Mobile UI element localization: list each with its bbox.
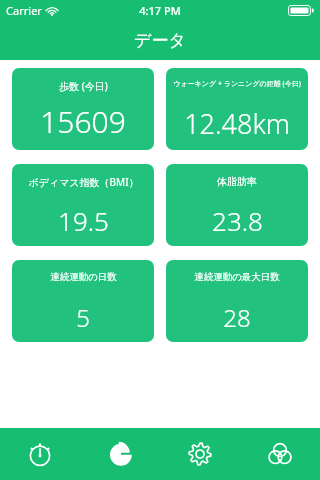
staticText: 歩数 (今日): [59, 79, 108, 93]
button[interactable]: 連続運動の日数: [12, 260, 154, 342]
button[interactable]: Data: [80, 428, 160, 480]
staticText: 28: [223, 301, 251, 334]
staticText: 12.48km: [184, 105, 290, 142]
staticText: 連続運動の日数: [50, 271, 117, 283]
staticText: 連続運動の最大日数: [194, 271, 280, 283]
button[interactable]: Settings: [160, 428, 240, 480]
staticText: データ: [134, 30, 186, 51]
staticText: 5: [76, 301, 90, 334]
button[interactable]: ウォーキング + ランニングの距離 (今日): [166, 68, 308, 150]
staticText: ボディマス指数（BMI）: [28, 175, 139, 189]
staticText: 23.8: [212, 203, 263, 238]
staticText: 15609: [40, 101, 126, 142]
button[interactable]: 体脂肪率: [166, 164, 308, 246]
staticText: 4:17 PM: [139, 3, 181, 18]
staticText: 19.5: [58, 203, 109, 238]
button[interactable]: ボディマス指数（BMI）: [12, 164, 154, 246]
staticText: ウォーキング + ランニングの距離 (今日): [173, 79, 301, 89]
button[interactable]: Timer: [0, 428, 80, 480]
button[interactable]: Circles: [240, 428, 320, 480]
staticText: 体脂肪率: [217, 175, 257, 188]
button[interactable]: 歩数 (今日): [12, 68, 154, 150]
button[interactable]: 連続運動の最大日数: [166, 260, 308, 342]
staticText: Carrier: [6, 3, 42, 18]
